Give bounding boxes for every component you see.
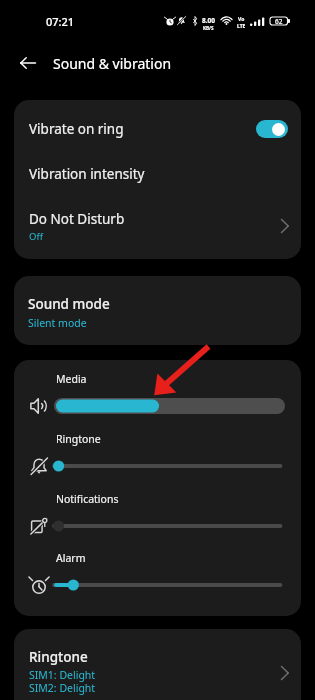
staticText: 62 bbox=[275, 17, 283, 25]
button[interactable]: Vibration intensity bbox=[14, 157, 301, 199]
button[interactable]: Media bbox=[14, 372, 301, 418]
staticText: Vo bbox=[238, 16, 245, 23]
button[interactable]: Ringtone bbox=[14, 432, 301, 478]
staticText: Notifications bbox=[56, 492, 119, 506]
button[interactable]: Back bbox=[6, 42, 50, 84]
staticText: 07:21 bbox=[46, 14, 75, 29]
button[interactable]: Do Not Disturb bbox=[14, 199, 301, 259]
button[interactable]: Vibrate on ring bbox=[14, 100, 301, 157]
staticText: Ringtone bbox=[29, 648, 88, 666]
staticText: Ringtone bbox=[56, 432, 101, 446]
staticText: Sound mode bbox=[28, 295, 110, 313]
button[interactable]: Ringtone bbox=[14, 629, 301, 700]
staticText: SIM1: Delight SIM2: Delight bbox=[29, 668, 96, 695]
staticText: Vibrate on ring bbox=[29, 120, 124, 138]
staticText: Media bbox=[56, 372, 87, 386]
button[interactable]: Sound mode bbox=[14, 276, 301, 345]
staticText: LTE bbox=[237, 23, 246, 30]
button[interactable]: Notifications bbox=[14, 492, 301, 538]
staticText: Vibration intensity bbox=[29, 165, 145, 183]
staticText: KB/S bbox=[203, 25, 214, 31]
staticText: Do Not Disturb bbox=[29, 210, 125, 228]
staticText: Silent mode bbox=[28, 316, 87, 330]
staticText: 8.00 bbox=[202, 16, 215, 25]
staticText: Off bbox=[29, 230, 43, 243]
staticText: Sound & vibration bbox=[53, 54, 172, 73]
button[interactable]: Alarm bbox=[14, 551, 301, 597]
staticText: Alarm bbox=[56, 551, 86, 565]
